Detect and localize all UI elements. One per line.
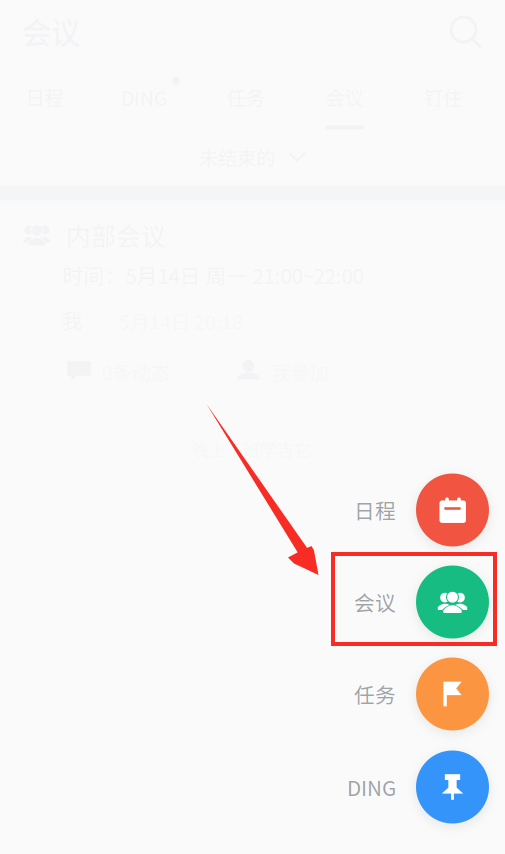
staticText: 会议 bbox=[354, 587, 396, 617]
button[interactable]: 任务 bbox=[299, 648, 489, 740]
staticText: 晚上下班学吉它 bbox=[192, 436, 311, 462]
button[interactable]: 会议 bbox=[299, 556, 489, 648]
button[interactable]: 内部会议 bbox=[0, 0, 505, 854]
staticText: 日程 bbox=[354, 495, 396, 525]
staticText: 任务 bbox=[354, 679, 396, 709]
staticText: DING bbox=[347, 772, 396, 802]
button[interactable]: DING bbox=[299, 741, 489, 833]
button[interactable]: 日程 bbox=[299, 464, 489, 556]
